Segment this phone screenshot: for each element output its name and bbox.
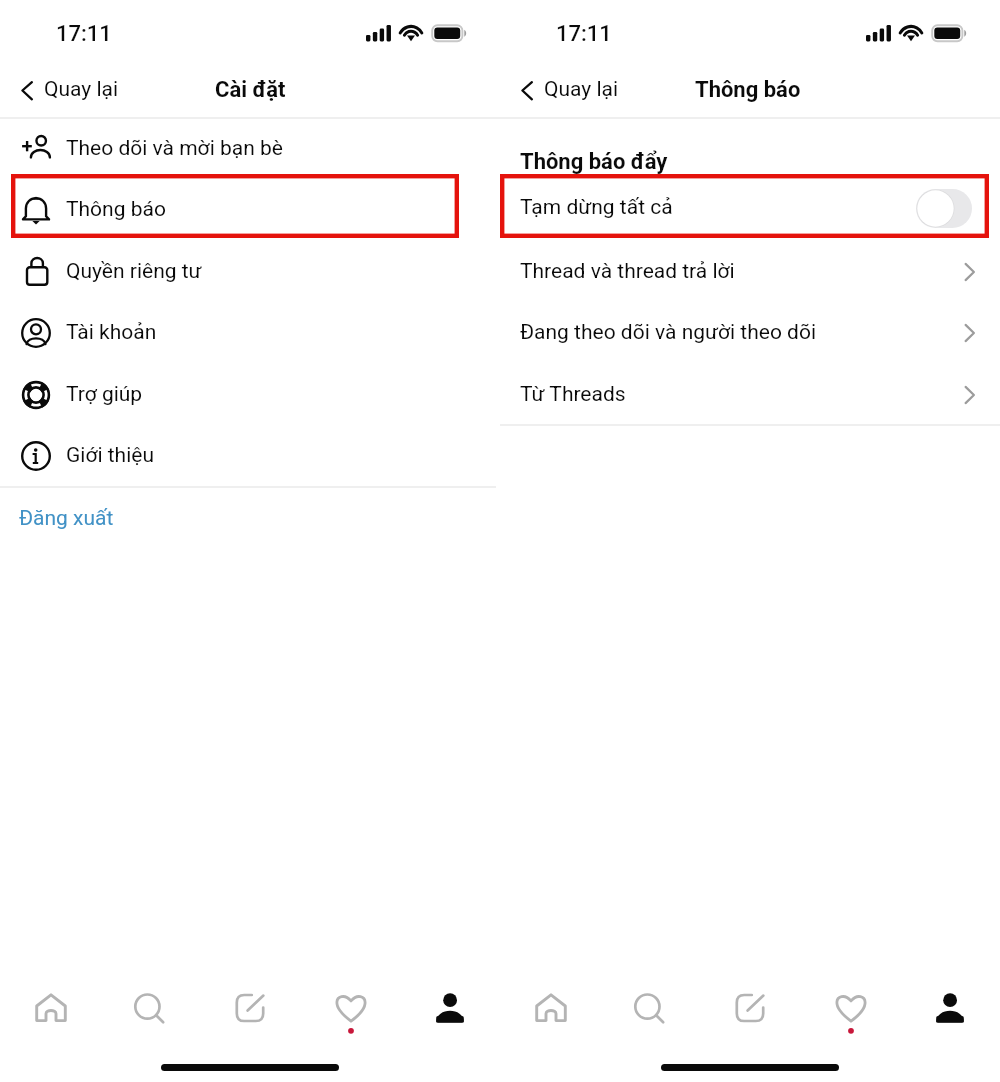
staticText: Theo dõi và mời bạn bè [66,136,283,161]
button[interactable]: Search [123,982,175,1034]
button[interactable]: Profile [924,982,976,1034]
staticText: Đăng xuất [19,506,114,531]
button[interactable]: Quyền riêng tư [0,241,500,302]
staticText: Thông báo [695,77,801,103]
button[interactable]: Giới thiệu [0,425,500,486]
button[interactable]: Thread và thread trả lời [500,241,1000,302]
button[interactable]: Tài khoản [0,302,500,363]
staticText: Quay lại [44,77,119,102]
button[interactable]: Activity [825,982,877,1034]
button[interactable]: Đang theo dõi và người theo dõi [500,302,1000,363]
button[interactable]: Profile [424,982,476,1034]
button[interactable]: Trợ giúp [0,364,500,425]
button[interactable]: Compose [724,982,776,1034]
staticText: 17:11 [56,21,112,47]
button[interactable]: Quay lại [14,67,130,111]
button[interactable]: Home [525,982,577,1034]
button[interactable]: Search [623,982,675,1034]
staticText: Thông báo [66,197,166,222]
staticText: Đang theo dõi và người theo dõi [520,320,817,345]
button[interactable]: Từ Threads [500,364,1000,425]
staticText: Từ Threads [520,382,626,407]
staticText: Quay lại [544,77,619,102]
staticText: Giới thiệu [66,443,154,468]
staticText: Cài đặt [215,77,286,103]
button[interactable]: Thông báo [0,179,500,240]
button[interactable]: Home [25,982,77,1034]
button[interactable]: Compose [224,982,276,1034]
button[interactable]: Theo dõi và mời bạn bè [0,118,500,179]
staticText: Tài khoản [66,320,157,345]
staticText: Quyền riêng tư [66,259,202,284]
staticText: Thông báo đẩy [520,149,668,175]
staticText: 17:11 [556,21,612,47]
button[interactable]: Activity [325,982,377,1034]
staticText: Tạm dừng tất cả [520,195,673,220]
staticText: Thread và thread trả lời [520,259,735,284]
staticText: Trợ giúp [66,382,143,407]
button[interactable]: Tạm dừng tất cả [500,179,1000,236]
button[interactable]: Đăng xuất [0,497,160,539]
button[interactable]: Quay lại [514,67,630,111]
